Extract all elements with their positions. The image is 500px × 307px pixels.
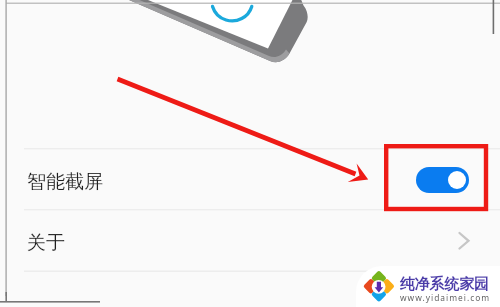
button[interactable]: 智能截屏 [0,149,500,210]
staticText: www.yidaimei.com [400,292,491,303]
staticText: 纯净系统家园 [400,275,489,294]
staticText: 智能截屏 [27,170,103,194]
button[interactable]: Smart screenshot toggle, on [416,167,469,193]
button[interactable]: 关于 [0,210,500,271]
staticText: 关于 [27,231,65,255]
